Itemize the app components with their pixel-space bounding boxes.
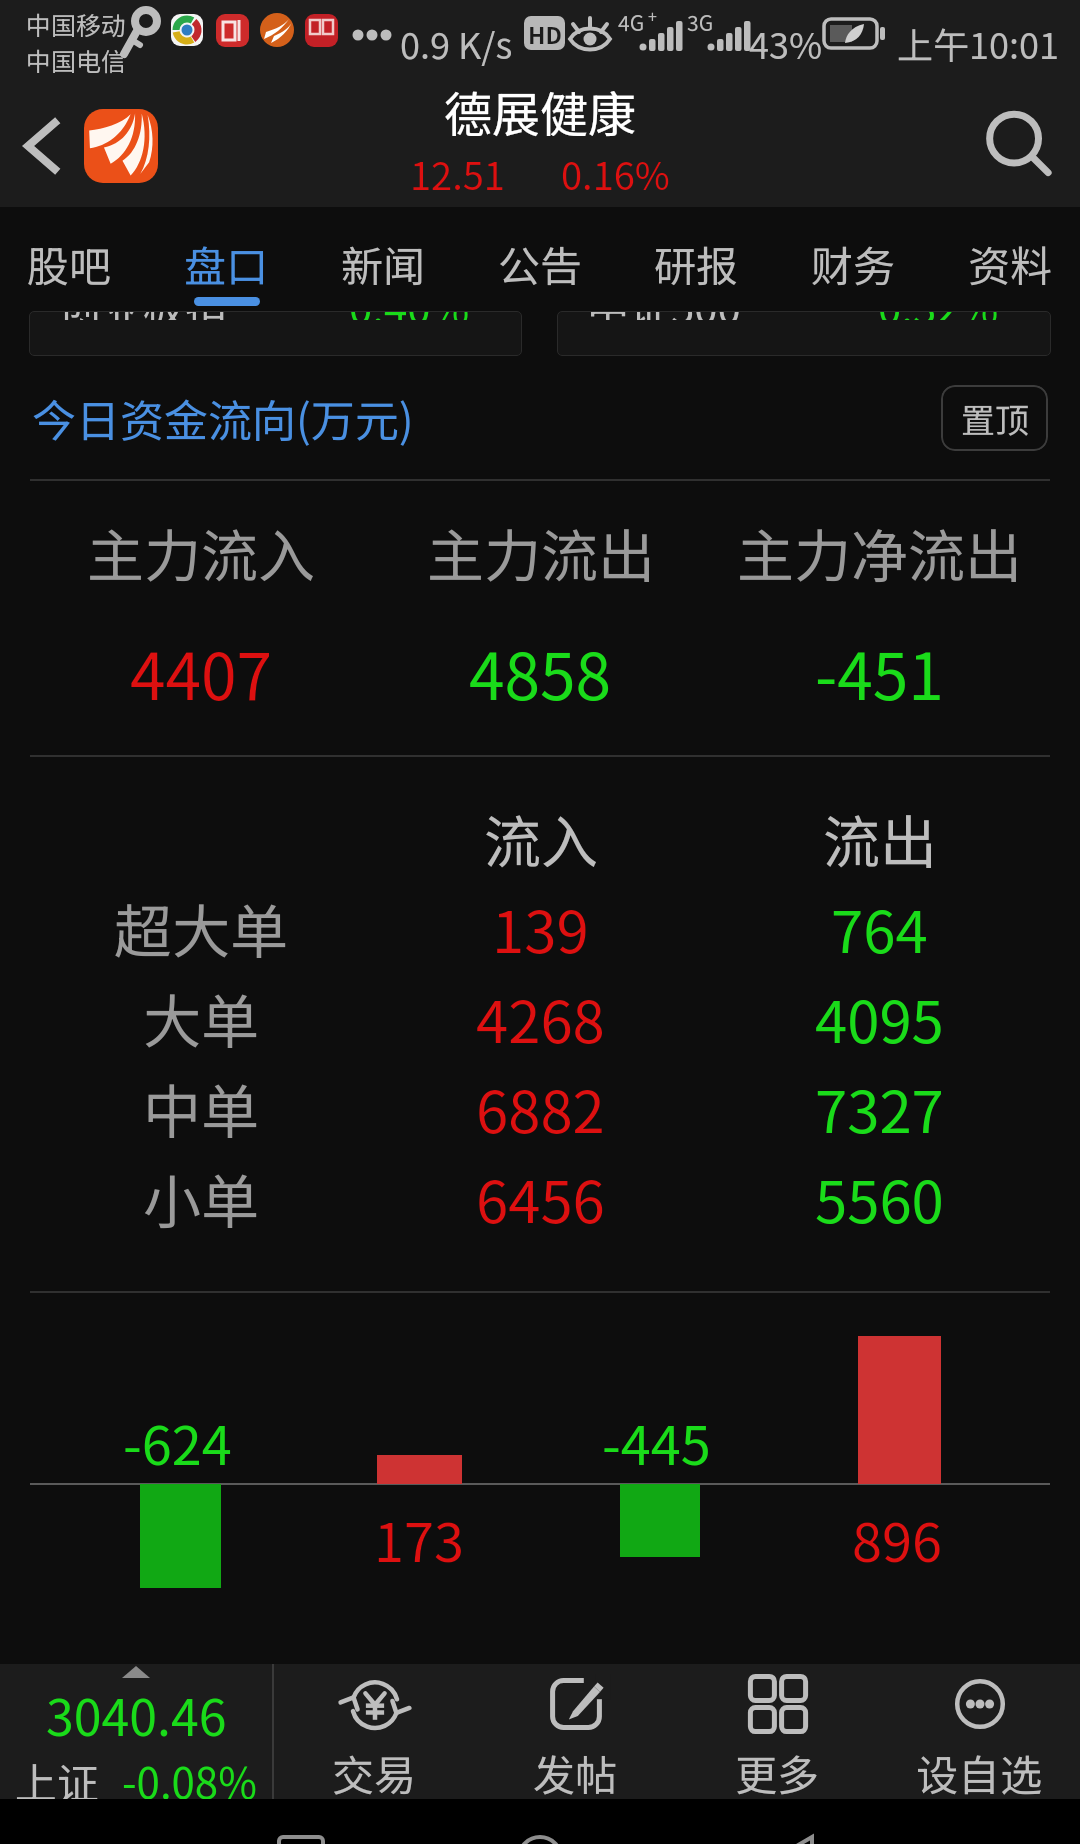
staticText: 德展健康: [444, 76, 637, 146]
staticText: 财务: [811, 233, 896, 294]
button[interactable]: 更多: [676, 1664, 878, 1799]
staticText: 上午10:01: [897, 17, 1059, 69]
staticText: 小单: [143, 1156, 260, 1240]
staticText: 主力流出: [427, 511, 655, 594]
button[interactable]: 资料: [968, 207, 1053, 311]
staticText: 173: [374, 1499, 464, 1577]
button[interactable]: 中证500: [557, 311, 1051, 356]
button[interactable]: 股吧: [27, 207, 112, 311]
staticText: 4095: [815, 976, 944, 1060]
staticText: 发帖: [533, 1742, 618, 1799]
staticText: 新闻: [341, 233, 426, 294]
staticText: 主力流入: [87, 511, 315, 594]
staticText: 0.16%: [561, 146, 670, 198]
staticText: 创业板指: [59, 311, 228, 320]
button[interactable]: 创业板指: [29, 311, 522, 356]
button[interactable]: App logo: [84, 109, 158, 183]
staticText: 更多: [735, 1742, 820, 1799]
staticText: -445: [602, 1402, 711, 1480]
staticText: 3G: [687, 7, 714, 37]
button[interactable]: 公告: [498, 207, 583, 311]
staticText: 中国移动: [26, 6, 127, 42]
staticText: 0.40%: [349, 311, 470, 320]
button[interactable]: Back: [0, 85, 84, 207]
button[interactable]: 盘口: [184, 207, 269, 311]
staticText: 中单: [143, 1066, 260, 1150]
staticText: 4858: [469, 626, 612, 719]
staticText: 超大单: [114, 886, 289, 970]
staticText: +: [648, 4, 657, 27]
staticText: 0.9 K/s: [400, 17, 513, 69]
staticText: 4407: [130, 626, 273, 719]
staticText: 764: [831, 886, 928, 970]
button[interactable]: 新闻: [341, 207, 426, 311]
staticText: 盘口: [184, 233, 269, 294]
staticText: 主力净流出: [737, 511, 1022, 594]
staticText: -0.08%: [122, 1750, 257, 1799]
button[interactable]: 财务: [811, 207, 896, 311]
staticText: 流入: [484, 797, 598, 880]
button[interactable]: 研报: [654, 207, 739, 311]
staticText: 7327: [815, 1066, 944, 1150]
staticText: -624: [123, 1402, 232, 1480]
button[interactable]: 交易: [274, 1664, 475, 1799]
staticText: 研报: [654, 233, 739, 294]
staticText: 12.51: [410, 146, 505, 198]
button[interactable]: 设自选: [878, 1664, 1080, 1799]
staticText: -451: [815, 626, 944, 719]
staticText: 公告: [498, 233, 583, 294]
button[interactable]: 3040.46: [0, 1664, 272, 1799]
staticText: 大单: [143, 976, 260, 1060]
staticText: 6882: [476, 1066, 605, 1150]
staticText: 股吧: [27, 233, 112, 294]
staticText: 43%: [749, 17, 823, 69]
staticText: 5560: [815, 1156, 944, 1240]
staticText: 交易: [332, 1742, 417, 1799]
staticText: 今日资金流向(万元): [32, 386, 414, 450]
staticText: 中国电信: [26, 42, 127, 78]
button[interactable]: Search: [960, 85, 1080, 207]
staticText: 896: [852, 1499, 942, 1577]
staticText: 设自选: [916, 1742, 1043, 1799]
staticText: 流出: [823, 797, 937, 880]
staticText: 4268: [476, 976, 605, 1060]
staticText: 中证500: [587, 311, 741, 320]
staticText: 上证: [15, 1750, 100, 1799]
staticText: 139: [492, 886, 589, 970]
button[interactable]: [0, 1799, 1080, 1844]
staticText: 0.32%: [878, 311, 999, 320]
button[interactable]: 发帖: [475, 1664, 676, 1799]
staticText: 4G: [618, 7, 645, 37]
staticText: HD: [528, 17, 562, 50]
button[interactable]: 置顶: [941, 385, 1048, 451]
staticText: 6456: [476, 1156, 605, 1240]
staticText: 资料: [968, 233, 1053, 294]
staticText: 3040.46: [46, 1678, 227, 1750]
staticText: 置顶: [961, 394, 1029, 443]
